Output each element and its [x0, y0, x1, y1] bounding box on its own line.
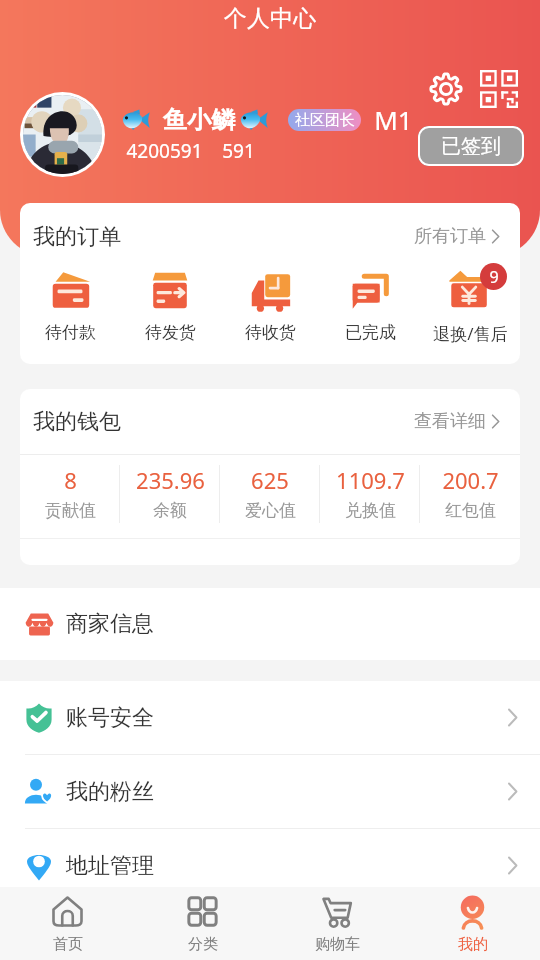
button[interactable]: 待付款 [20, 264, 120, 358]
staticText: 分类 [188, 935, 218, 954]
staticText: 鱼小鳞 [163, 105, 235, 135]
staticText: 8 [64, 465, 77, 495]
button[interactable]: 账号安全 [0, 681, 540, 754]
staticText: 235.96 [136, 465, 205, 495]
staticText: 社区团长 [295, 111, 355, 130]
staticText: 余额 [153, 500, 187, 521]
staticText: 地址管理 [66, 852, 154, 880]
staticText: 商家信息 [66, 610, 154, 638]
button[interactable]: 首页 [0, 887, 135, 960]
staticText: 个人中心 [224, 4, 316, 33]
staticText: 我的钱包 [33, 408, 121, 436]
staticText: 我的订单 [33, 223, 121, 251]
button[interactable]: Profile photo [23, 95, 102, 174]
button[interactable]: 地址管理 [0, 829, 540, 902]
staticText: 所有订单 [414, 225, 486, 248]
staticText: 待付款 [45, 322, 96, 343]
staticText: 红包值 [445, 500, 496, 521]
staticText: 待发货 [145, 322, 196, 343]
button[interactable]: 我的订单 [20, 203, 520, 270]
staticText: 退换/售后 [433, 322, 508, 345]
staticText: 兑换值 [345, 500, 396, 521]
staticText: 爱心值 [245, 500, 296, 521]
button[interactable]: 200.7 [420, 455, 520, 538]
staticText: 已完成 [345, 322, 396, 343]
button[interactable]: 已签到 [418, 126, 524, 166]
staticText: 账号安全 [66, 704, 154, 732]
staticText: 9 [489, 266, 499, 288]
button[interactable]: 9 [420, 264, 520, 358]
button[interactable]: 1109.7 [320, 455, 420, 538]
button[interactable]: Scan QR code [476, 66, 522, 112]
staticText: 200.7 [442, 465, 499, 495]
staticText: 待收货 [245, 322, 296, 343]
button[interactable]: 待收货 [220, 264, 320, 358]
staticText: 查看详细 [414, 410, 486, 433]
button[interactable]: 8 [20, 455, 120, 538]
button[interactable]: 商家信息 [0, 588, 540, 660]
staticText: 我的粉丝 [66, 778, 154, 806]
button[interactable]: 我的粉丝 [0, 755, 540, 828]
button[interactable]: 我的钱包 [20, 389, 520, 454]
staticText: 591 [222, 138, 255, 164]
staticText: 已签到 [441, 134, 501, 159]
staticText: 625 [251, 465, 289, 495]
staticText: M1 [374, 102, 413, 137]
button[interactable]: 235.96 [120, 455, 220, 538]
staticText: 首页 [53, 935, 83, 954]
button[interactable]: 已完成 [320, 264, 420, 358]
staticText: 贡献值 [45, 500, 96, 521]
button[interactable]: 待发货 [120, 264, 220, 358]
staticText: 我的 [458, 935, 488, 954]
staticText: 4200591 [126, 138, 203, 164]
button[interactable]: 我的 [405, 887, 540, 960]
button[interactable]: 625 [220, 455, 320, 538]
staticText: 1109.7 [336, 465, 405, 495]
button[interactable]: 社区团长 [288, 109, 361, 131]
staticText: 购物车 [315, 935, 360, 954]
button[interactable]: Settings [424, 67, 468, 111]
button[interactable]: 分类 [135, 887, 270, 960]
button[interactable]: 购物车 [270, 887, 405, 960]
